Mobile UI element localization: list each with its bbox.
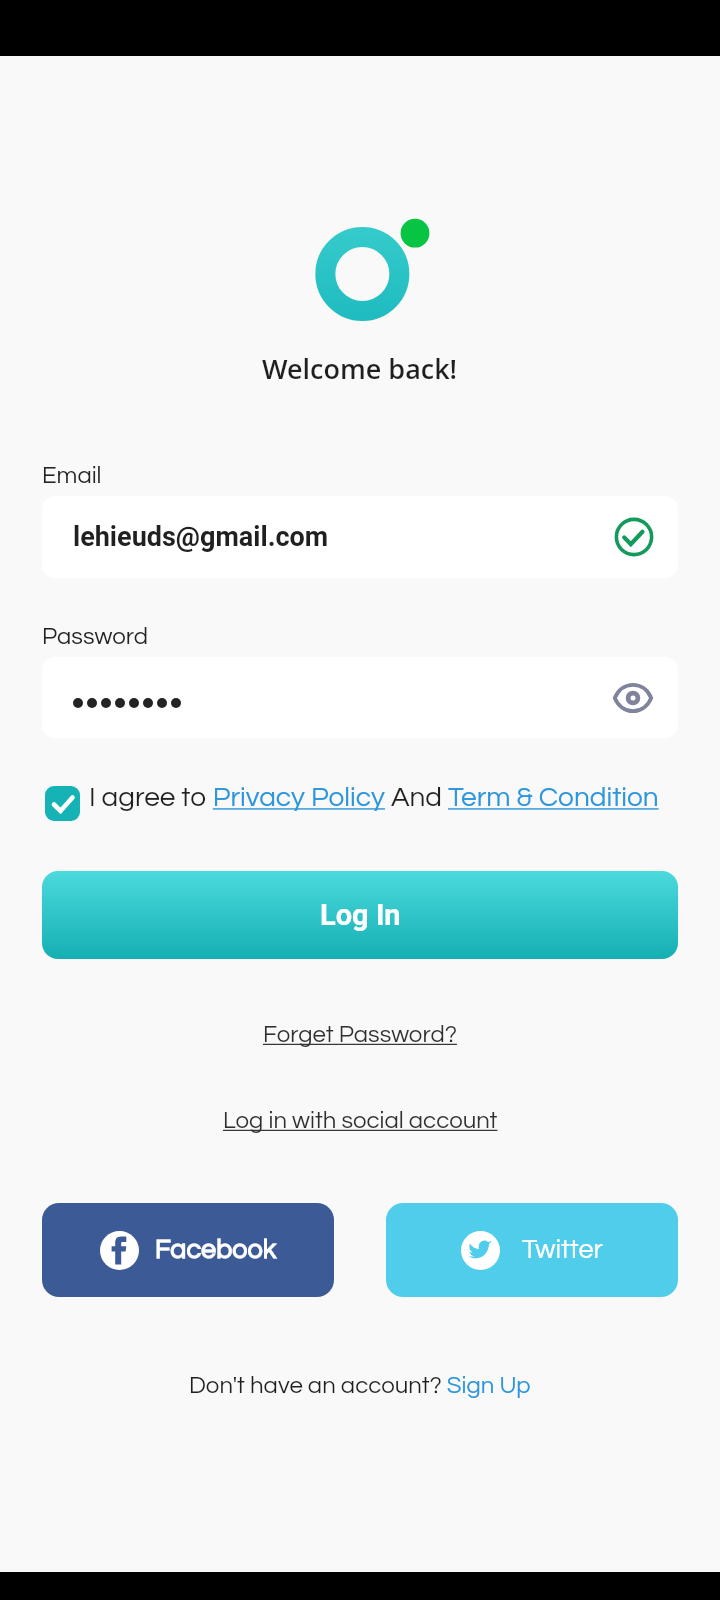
button[interactable]: Facebook xyxy=(42,1203,334,1297)
staticText: Facebook xyxy=(155,1236,277,1264)
staticText: I agree to Privacy Policy And Term & Con… xyxy=(89,783,659,812)
button[interactable]: Don't have an account? Sign Up xyxy=(189,1373,531,1398)
staticText: lehieuds@gmail.com xyxy=(73,521,329,553)
button[interactable]: I agree checkbox xyxy=(45,786,80,821)
staticText: Log In xyxy=(320,898,401,932)
button[interactable]: Log In xyxy=(42,871,678,959)
button[interactable]: Show password xyxy=(42,657,678,738)
button[interactable]: Forget Password? xyxy=(263,1022,457,1047)
button[interactable]: Show password xyxy=(611,676,655,720)
staticText: Password xyxy=(42,624,148,649)
staticText: Email xyxy=(42,463,102,488)
button[interactable]: Log in with social account xyxy=(223,1108,498,1133)
button[interactable]: lehieuds@gmail.com xyxy=(42,496,678,578)
staticText: Twitter xyxy=(522,1236,603,1264)
button[interactable]: Welcome back! xyxy=(262,350,458,387)
button[interactable]: Twitter xyxy=(386,1203,678,1297)
